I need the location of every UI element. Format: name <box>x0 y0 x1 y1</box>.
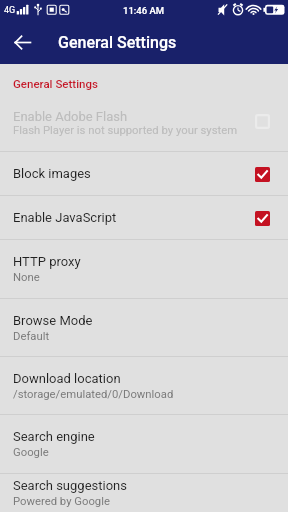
staticText: Enable Adobe Flash <box>13 109 128 124</box>
staticText: 11:46 AM <box>123 5 165 16</box>
staticText: Browse Mode <box>13 313 93 328</box>
staticText: 4G <box>4 5 16 16</box>
staticText: /storage/emulated/0/Download <box>13 388 174 401</box>
staticText: None <box>13 271 40 284</box>
staticText: Search suggestions <box>13 478 127 493</box>
staticText: Enable JavaScript <box>13 210 117 225</box>
staticText: Block images <box>13 166 91 181</box>
button[interactable]: HTTP proxy <box>0 240 288 298</box>
button[interactable]: Enable JavaScript <box>0 196 288 239</box>
staticText: General Settings <box>13 77 98 90</box>
button[interactable]: Search engine <box>0 415 288 473</box>
staticText: Powered by Google <box>13 495 110 508</box>
staticText: Flash Player is not supported by your sy… <box>13 124 238 137</box>
staticText: Download location <box>13 371 121 386</box>
button[interactable]: Block images <box>0 152 288 195</box>
staticText: Default <box>13 330 50 343</box>
staticText: Search engine <box>13 429 95 444</box>
button[interactable]: Search suggestions <box>0 474 288 512</box>
button[interactable]: Download location <box>0 357 288 414</box>
button[interactable]: Enable Adobe Flash <box>0 99 288 151</box>
staticText: General Settings <box>58 33 177 52</box>
button[interactable]: Browse Mode <box>0 299 288 356</box>
button[interactable]: Back <box>0 20 44 64</box>
staticText: HTTP proxy <box>13 254 81 269</box>
staticText: Google <box>13 446 49 459</box>
